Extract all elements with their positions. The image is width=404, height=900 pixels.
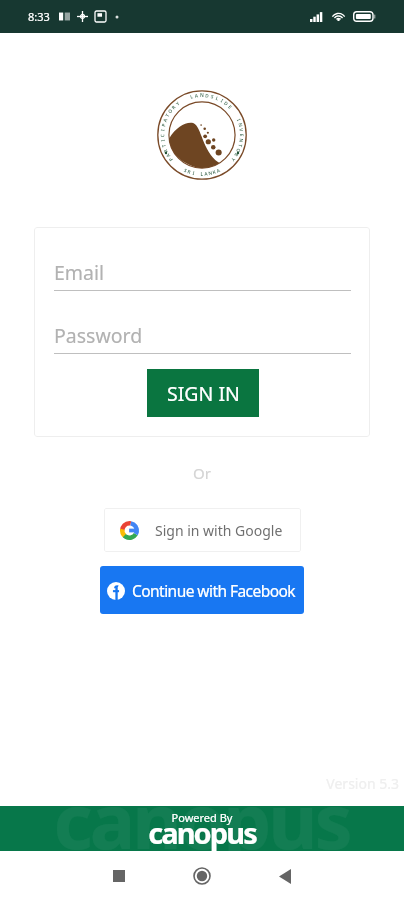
staticText: Password: [54, 322, 143, 349]
button[interactable]: Sign in with Google: [104, 508, 301, 552]
button[interactable]: Back: [261, 852, 309, 900]
staticText: SIGN IN: [167, 380, 240, 407]
button[interactable]: SIGN IN: [147, 369, 259, 417]
staticText: Or: [193, 463, 211, 483]
staticText: Powered By: [0, 810, 404, 825]
staticText: Sign in with Google: [155, 521, 283, 540]
staticText: canopus: [0, 813, 404, 852]
button[interactable]: Home: [178, 852, 226, 900]
staticText: Continue with Facebook: [132, 580, 296, 601]
button[interactable]: Continue with Facebook: [100, 566, 304, 614]
staticText: Email: [54, 259, 105, 286]
button[interactable]: Recent apps: [95, 852, 143, 900]
staticText: 8:33: [28, 9, 50, 24]
